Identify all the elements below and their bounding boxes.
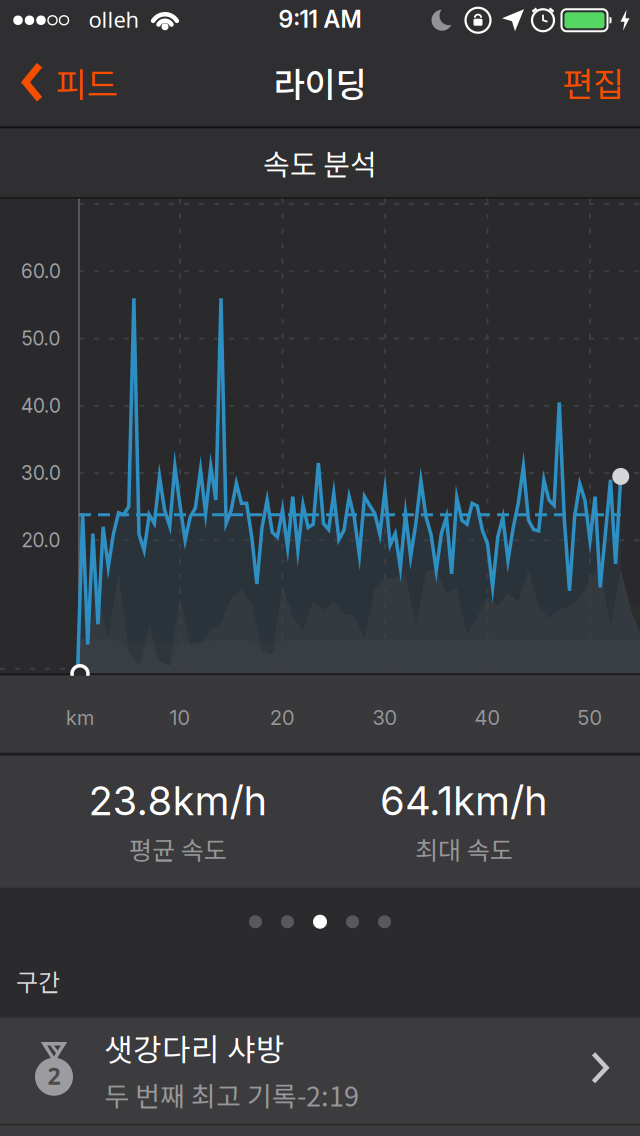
staticText: km [66, 706, 94, 730]
staticText: 라이딩 [273, 58, 366, 107]
staticText: 피드 [55, 58, 117, 107]
staticText: 50 [577, 706, 602, 730]
staticText: 두 번째 최고 기록-2:19 [104, 1075, 359, 1114]
staticText: 20.0 [21, 529, 60, 552]
staticText: olleh [88, 5, 139, 34]
staticText: 평균 속도 [129, 831, 227, 867]
button[interactable]: 편집 [562, 58, 624, 107]
staticText: 64.1km/h [380, 776, 548, 825]
staticText: 샛강다리 샤방 [104, 1025, 285, 1070]
staticText: 30.0 [21, 462, 61, 485]
staticText: 편집 [562, 58, 624, 107]
button[interactable]: 2 [0, 1018, 640, 1136]
staticText: 50.0 [21, 327, 60, 350]
staticText: 최대 속도 [415, 831, 513, 867]
staticText: 60.0 [21, 260, 61, 283]
staticText: 40 [474, 706, 500, 730]
staticText: 23.8km/h [88, 776, 267, 825]
staticText: 2 [47, 1060, 60, 1091]
staticText: 20 [270, 706, 295, 730]
staticText: 구간 [16, 963, 60, 998]
staticText: 40.0 [21, 394, 61, 417]
staticText: 10 [169, 706, 190, 730]
staticText: 9:11 AM [278, 5, 361, 33]
button[interactable]: 피드 [22, 58, 117, 107]
staticText: 30 [372, 706, 397, 730]
staticText: 속도 분석 [263, 142, 377, 184]
